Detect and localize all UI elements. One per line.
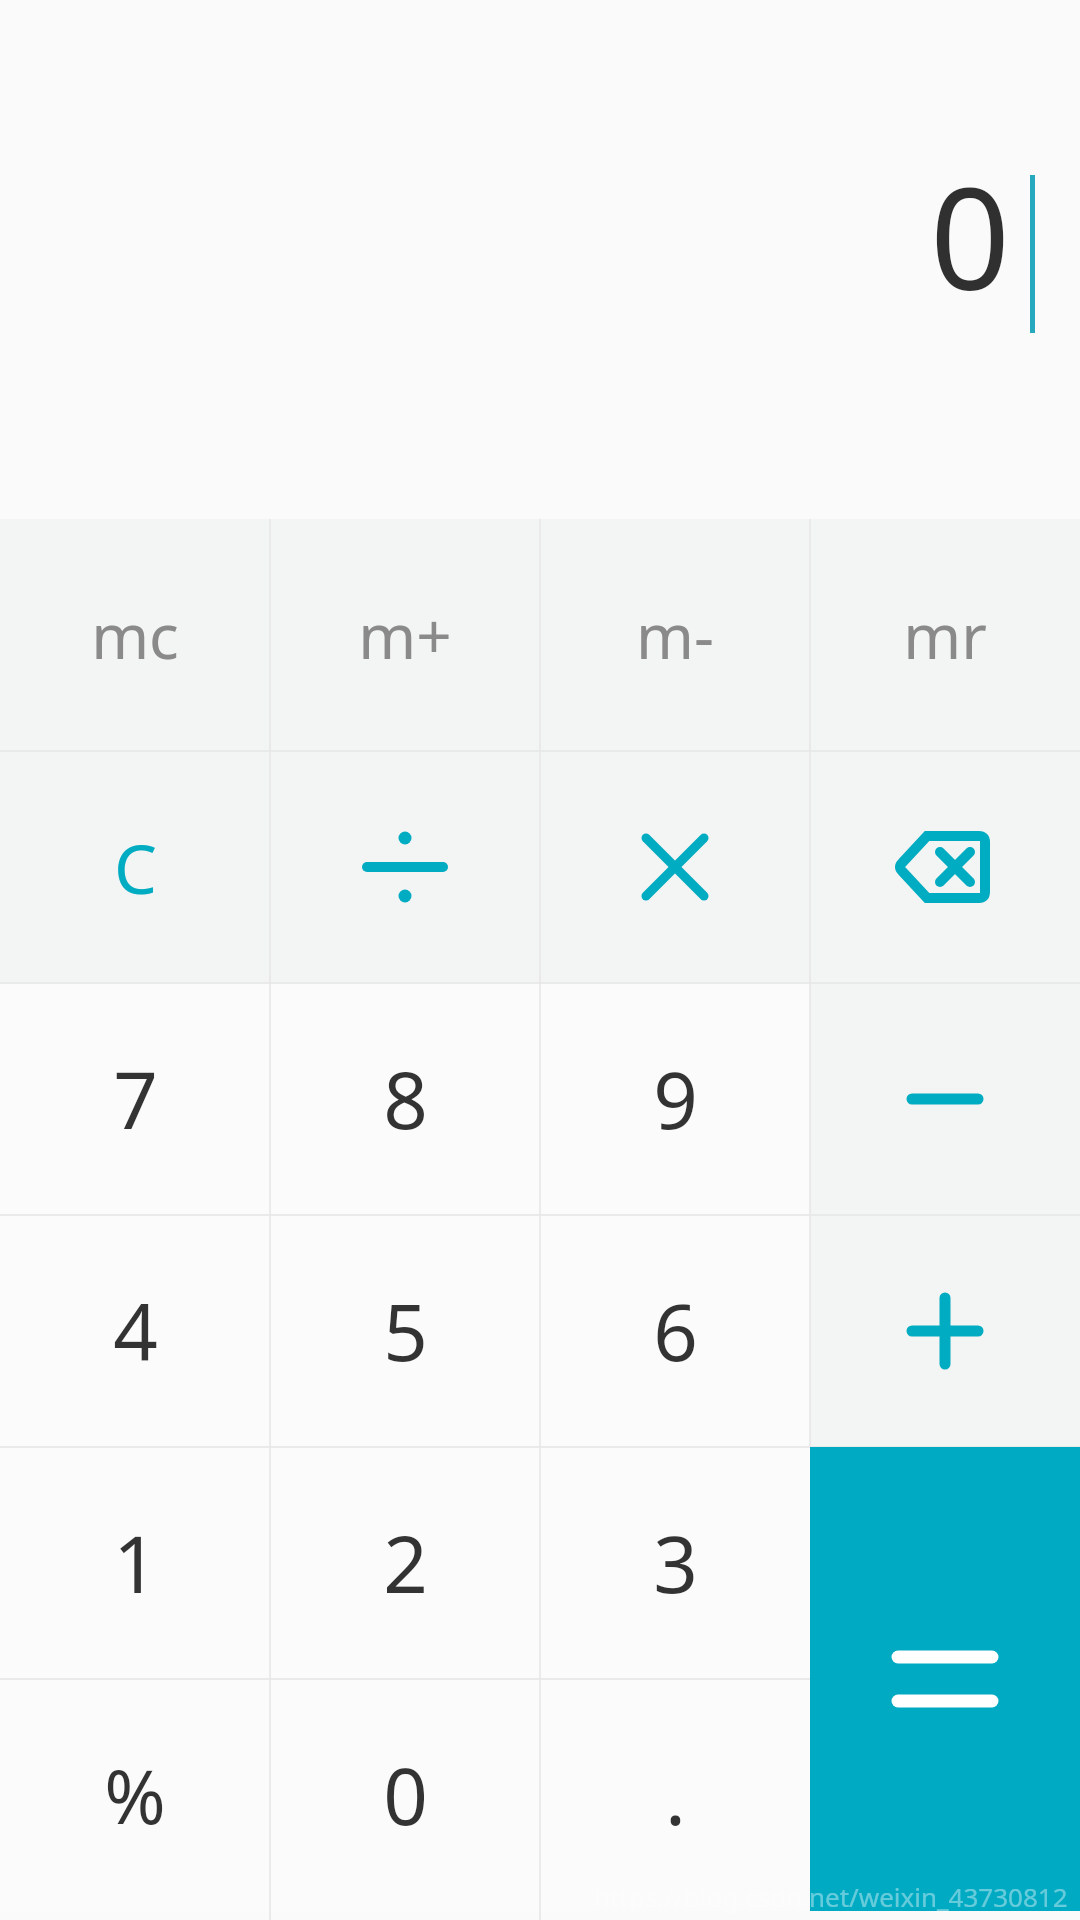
button[interactable]: Divide bbox=[270, 751, 540, 983]
button[interactable]: Plus bbox=[810, 1215, 1080, 1447]
staticText: 8 bbox=[383, 1046, 428, 1152]
button[interactable]: Multiply bbox=[540, 751, 810, 983]
button[interactable]: Backspace bbox=[810, 751, 1080, 983]
button[interactable]: % bbox=[0, 1679, 270, 1911]
button[interactable]: Equals bbox=[810, 1447, 1080, 1911]
staticText: 5 bbox=[383, 1278, 428, 1384]
staticText: 1 bbox=[113, 1510, 158, 1616]
staticText: 2 bbox=[383, 1510, 428, 1616]
staticText: 0 bbox=[383, 1742, 428, 1848]
button[interactable]: C bbox=[0, 751, 270, 983]
button[interactable]: mr bbox=[810, 519, 1080, 751]
staticText: 3 bbox=[653, 1510, 698, 1616]
staticText: mc bbox=[91, 593, 179, 677]
button[interactable]: 4 bbox=[0, 1215, 270, 1447]
button[interactable]: m- bbox=[540, 519, 810, 751]
button[interactable]: 3 bbox=[540, 1447, 810, 1679]
button[interactable]: 0 bbox=[270, 1679, 540, 1911]
staticText: % bbox=[104, 1745, 166, 1846]
staticText: https://blog.csdn.net/weixin_43730812 bbox=[594, 1879, 1068, 1914]
button[interactable]: 9 bbox=[540, 983, 810, 1215]
staticText: m+ bbox=[358, 593, 452, 677]
staticText: 9 bbox=[653, 1046, 698, 1152]
button[interactable]: 1 bbox=[0, 1447, 270, 1679]
button[interactable]: 2 bbox=[270, 1447, 540, 1679]
staticText: . bbox=[665, 1742, 686, 1848]
staticText: 7 bbox=[113, 1046, 158, 1152]
button[interactable]: mc bbox=[0, 519, 270, 751]
button[interactable]: m+ bbox=[270, 519, 540, 751]
button[interactable]: 8 bbox=[270, 983, 540, 1215]
button[interactable]: . bbox=[540, 1679, 810, 1911]
staticText: mr bbox=[903, 593, 987, 677]
staticText: 0 bbox=[929, 140, 1010, 331]
staticText: 6 bbox=[653, 1278, 698, 1384]
button[interactable]: 6 bbox=[540, 1215, 810, 1447]
button[interactable]: 7 bbox=[0, 983, 270, 1215]
staticText: C bbox=[114, 821, 157, 914]
button[interactable]: 5 bbox=[270, 1215, 540, 1447]
staticText: 4 bbox=[113, 1278, 158, 1384]
button[interactable]: Minus bbox=[810, 983, 1080, 1215]
staticText: m- bbox=[636, 593, 714, 677]
